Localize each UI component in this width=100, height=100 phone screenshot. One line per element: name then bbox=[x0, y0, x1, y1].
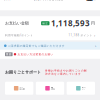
staticText: 11,188 ポイント bbox=[68, 33, 92, 37]
staticText: 支払いに ついて bbox=[82, 87, 86, 90]
staticText: お支払い方法変更のお願い bbox=[17, 53, 53, 56]
staticText: › bbox=[94, 33, 95, 38]
button[interactable]: 各種 お手続き bbox=[36, 82, 64, 95]
staticText: 2021年01月ご利用分 bbox=[34, 0, 64, 1]
staticText: ご請求額の確定前でもご確認いただけます bbox=[8, 44, 65, 47]
button[interactable]: カード 紛失・盗難 bbox=[5, 82, 33, 95]
staticText: 重要 bbox=[6, 53, 12, 56]
staticText: 1,118,593 bbox=[51, 18, 90, 28]
staticText: 確定 bbox=[42, 22, 48, 25]
staticText: お支払い金額 bbox=[5, 21, 29, 26]
staticText: 利用可能額/ポイント bbox=[5, 33, 33, 37]
staticText: お困りごとサポート bbox=[5, 70, 41, 75]
staticText: カード 紛失・盗難 bbox=[19, 87, 24, 90]
staticText: 9:41 bbox=[4, 0, 11, 1]
staticText: ▂▄▆ bbox=[87, 0, 93, 1]
button[interactable]: 支払いに ついて bbox=[67, 82, 95, 95]
button[interactable]: 重要 bbox=[0, 50, 100, 59]
button[interactable]: ご請求額の確定前でもご確認いただけます bbox=[0, 42, 100, 50]
staticText: › bbox=[95, 43, 96, 48]
staticText: 各種お手続きやお困りごとの解決方法をご案内しています bbox=[45, 69, 87, 76]
staticText: 円 bbox=[90, 21, 95, 26]
staticText: 各種 お手続き bbox=[51, 87, 55, 90]
